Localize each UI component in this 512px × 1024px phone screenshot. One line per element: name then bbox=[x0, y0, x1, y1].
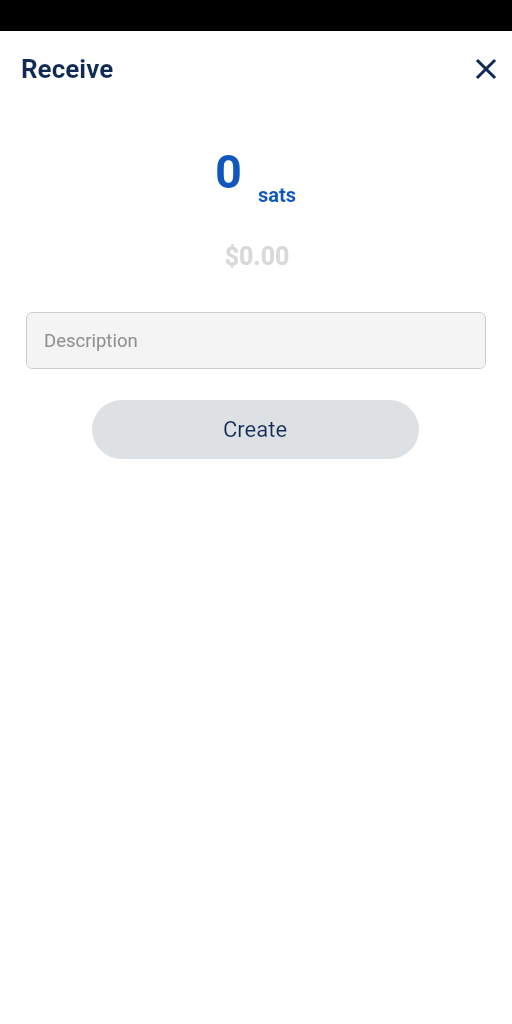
staticText: Description bbox=[44, 330, 138, 352]
staticText: sats bbox=[258, 183, 297, 206]
button[interactable]: Description bbox=[26, 312, 486, 369]
staticText: 0 bbox=[215, 144, 242, 199]
button[interactable]: Close bbox=[462, 45, 510, 93]
staticText: Receive bbox=[21, 54, 114, 84]
staticText: $0.00 bbox=[1, 242, 512, 271]
button[interactable]: Create bbox=[92, 400, 419, 459]
staticText: Create bbox=[223, 417, 288, 443]
